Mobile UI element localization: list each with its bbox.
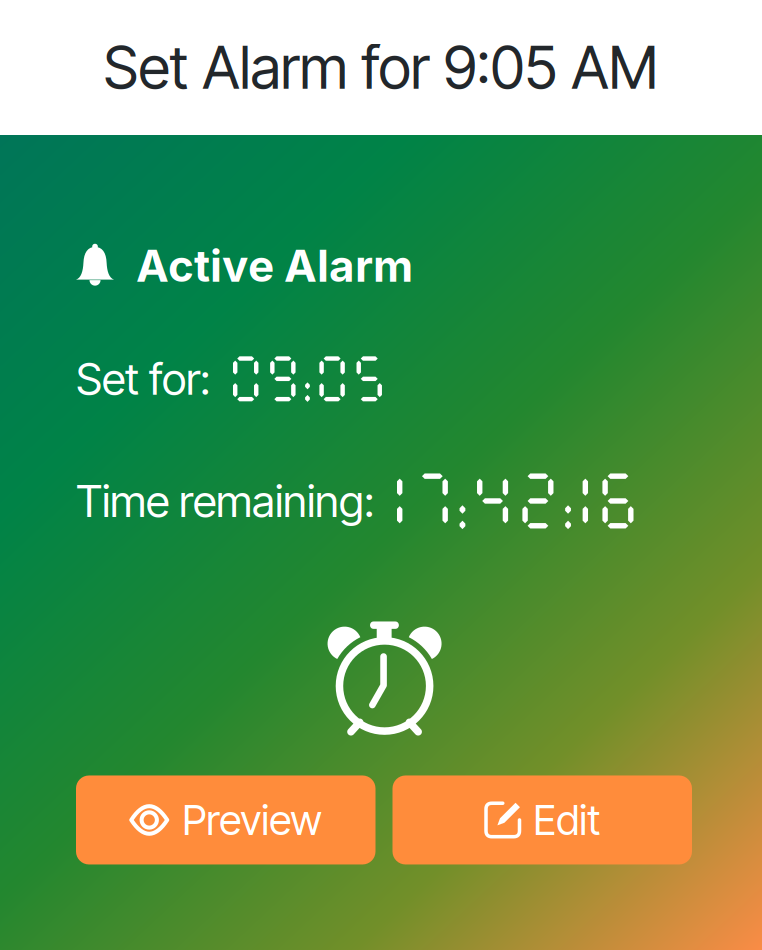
staticText: Active Alarm	[136, 239, 413, 292]
staticText: Set for:	[76, 352, 210, 405]
staticText: Set Alarm for 9:05 AM	[103, 32, 658, 103]
staticText: Edit	[533, 795, 600, 845]
staticText: Time remaining:	[76, 474, 374, 528]
staticText: Preview	[182, 795, 322, 845]
button[interactable]: Edit	[392, 775, 692, 864]
button[interactable]: Preview	[76, 775, 375, 864]
